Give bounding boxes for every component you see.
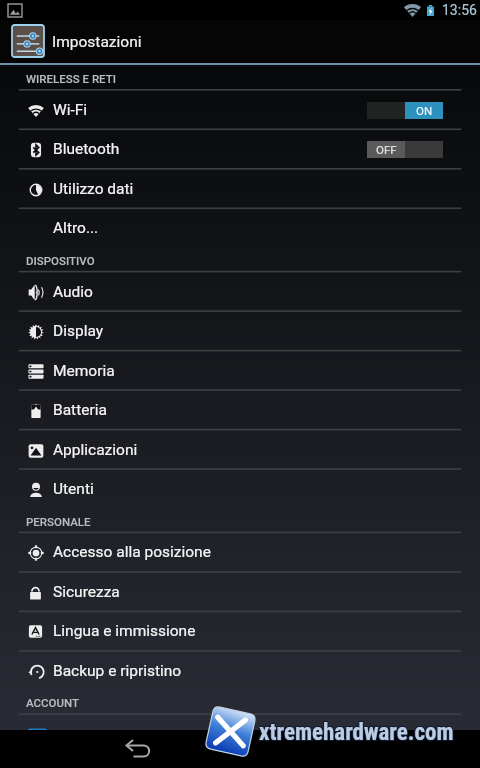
staticText: ACCOUNT bbox=[26, 696, 79, 709]
button[interactable]: OFF bbox=[367, 141, 443, 158]
button[interactable]: Batteria bbox=[0, 390, 480, 430]
staticText: Batteria bbox=[53, 401, 107, 419]
button[interactable]: Sicurezza bbox=[0, 572, 480, 612]
staticText: xtremehardware.com bbox=[258, 719, 453, 746]
staticText: OFF bbox=[376, 143, 397, 156]
staticText: 13:56 bbox=[442, 2, 477, 18]
staticText: Wi-Fi bbox=[53, 101, 88, 119]
button[interactable]: Utenti bbox=[0, 469, 480, 509]
button[interactable]: Back bbox=[114, 730, 162, 768]
button[interactable]: Audio bbox=[0, 272, 480, 312]
staticText: xtremehardware.com bbox=[258, 720, 453, 747]
staticText: WIRELESS E RETI bbox=[26, 72, 116, 85]
staticText: PERSONALE bbox=[26, 515, 91, 528]
staticText: Applicazioni bbox=[53, 441, 138, 459]
staticText: Utilizzo dati bbox=[53, 180, 134, 198]
staticText: Impostazioni bbox=[52, 33, 142, 51]
button[interactable]: Bluetooth bbox=[0, 129, 480, 169]
staticText: Sicurezza bbox=[53, 583, 120, 601]
staticText: Memoria bbox=[53, 362, 115, 380]
staticText: DISPOSITIVO bbox=[26, 254, 95, 267]
staticText: Backup e ripristino bbox=[53, 662, 182, 680]
staticText: xtremehardware.com bbox=[259, 720, 454, 747]
staticText: Audio bbox=[53, 283, 93, 301]
staticText: Bluetooth bbox=[53, 140, 120, 158]
staticText: xtremehardware.com bbox=[258, 718, 453, 745]
button[interactable]: Wi-Fi bbox=[0, 90, 480, 130]
staticText: Utenti bbox=[53, 480, 94, 498]
staticText: Accesso alla posizione bbox=[53, 543, 211, 561]
staticText: ON bbox=[416, 104, 433, 117]
staticText: xtremehardware.com bbox=[260, 720, 455, 747]
button[interactable]: Impostazioni bbox=[0, 20, 480, 63]
button[interactable]: Applicazioni bbox=[0, 430, 480, 470]
button[interactable]: ON bbox=[367, 102, 443, 119]
staticText: Altro... bbox=[53, 219, 99, 237]
staticText: xtremehardware.com bbox=[259, 718, 454, 745]
button[interactable]: Display bbox=[0, 311, 480, 351]
staticText: Lingua e immissione bbox=[53, 622, 196, 640]
staticText: xtremehardware.com bbox=[260, 719, 455, 746]
button[interactable]: Accesso alla posizione bbox=[0, 532, 480, 572]
staticText: Display bbox=[53, 322, 104, 340]
button[interactable]: Backup e ripristino bbox=[0, 651, 480, 691]
button[interactable]: Memoria bbox=[0, 351, 480, 391]
button[interactable] bbox=[0, 714, 480, 754]
staticText: xtremehardware.com bbox=[259, 719, 454, 746]
button[interactable]: Lingua e immissione bbox=[0, 611, 480, 651]
staticText: xtremehardware.com bbox=[260, 718, 455, 745]
button[interactable]: Altro... bbox=[0, 208, 480, 248]
button[interactable]: Utilizzo dati bbox=[0, 169, 480, 209]
